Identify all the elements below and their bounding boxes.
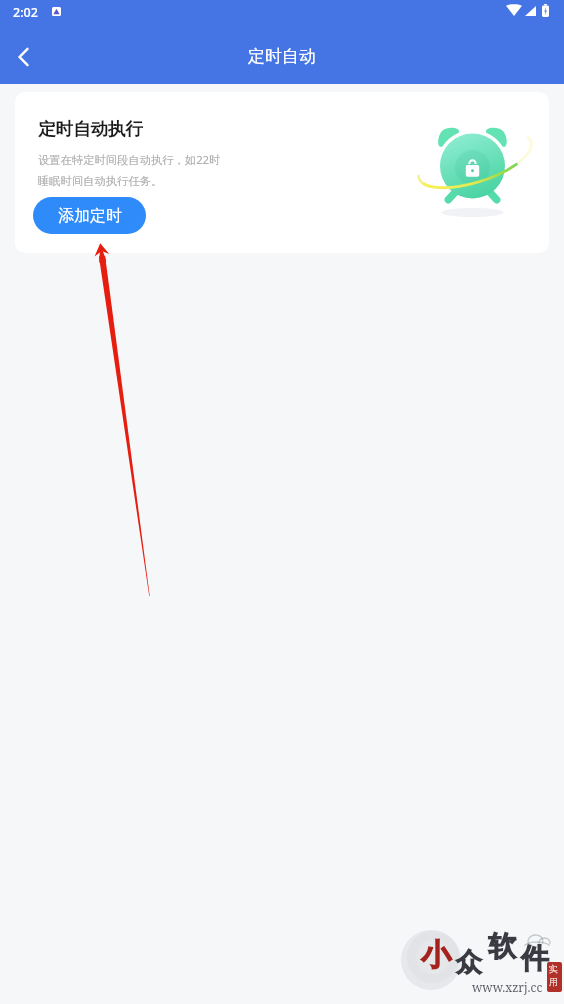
- staticText: 实 用: [549, 963, 558, 988]
- button[interactable]: Back: [0, 33, 48, 81]
- staticText: 设置在特定时间段自动执行，如22时 睡眠时间自动执行任务。: [38, 152, 221, 188]
- staticText: 定时自动: [248, 46, 316, 67]
- staticText: 定时自动执行: [38, 118, 143, 140]
- staticText: www.xzrj.cc: [472, 979, 543, 995]
- button[interactable]: 添加定时: [33, 197, 146, 234]
- staticText: 软: [488, 929, 516, 964]
- staticText: 小: [421, 936, 451, 974]
- staticText: 件: [521, 941, 549, 976]
- staticText: 2:02: [13, 4, 38, 21]
- staticText: 添加定时: [58, 206, 122, 226]
- staticText: 众: [456, 946, 482, 979]
